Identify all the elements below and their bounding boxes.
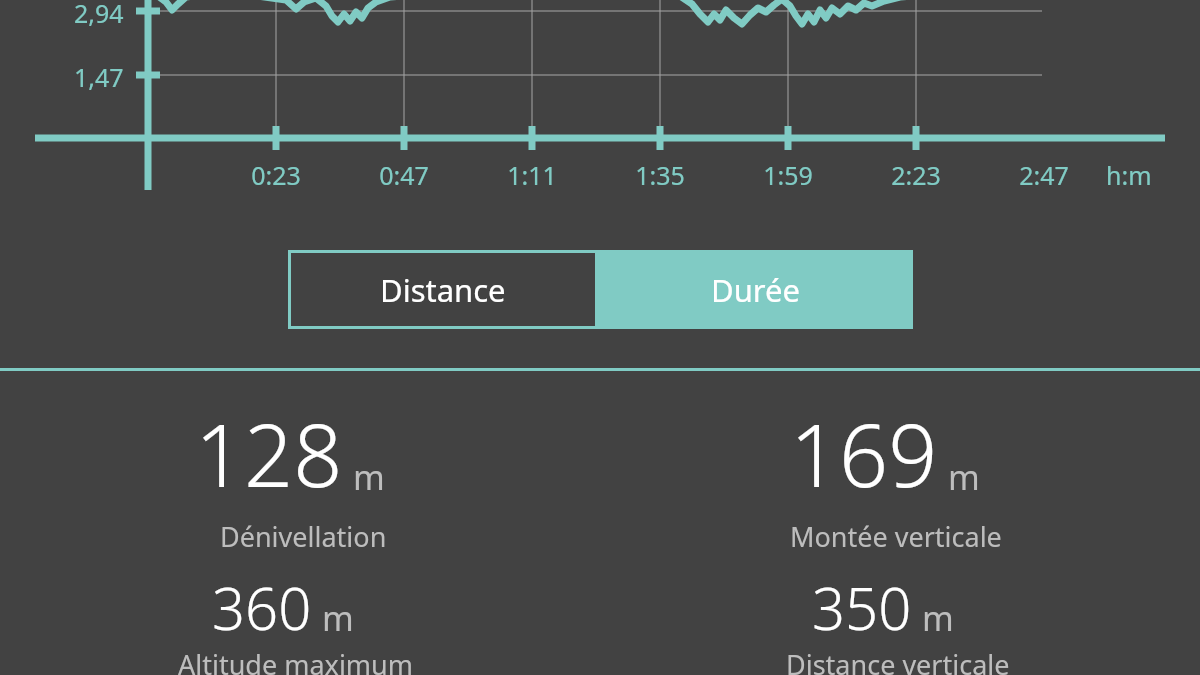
staticText: Distance [380,269,506,311]
staticText: Distance verticale [786,646,1010,675]
staticText: 169 [790,395,938,512]
staticText: 1,47 [74,60,124,94]
staticText: 2,94 [74,0,124,30]
staticText: 360 [212,568,312,647]
staticText: Altitude maximum [178,646,414,675]
staticText: 1:59 [740,158,836,192]
button[interactable]: Distance [288,250,598,329]
staticText: 1:11 [484,158,580,192]
staticText: 0:47 [356,158,452,192]
staticText: 2:23 [868,158,964,192]
staticText: Montée verticale [790,518,1002,555]
staticText: 350 [812,568,912,647]
staticText: Durée [711,269,800,311]
staticText: m [322,595,354,641]
staticText: 1:35 [612,158,708,192]
staticText: 128 [195,395,343,512]
staticText: 2:47 [996,158,1092,192]
staticText: m [353,454,385,500]
button[interactable]: Durée [598,250,913,329]
staticText: Dénivellation [220,518,387,555]
staticText: 0:23 [228,158,324,192]
staticText: h:m [1106,158,1152,192]
staticText: m [922,595,954,641]
staticText: m [948,454,980,500]
